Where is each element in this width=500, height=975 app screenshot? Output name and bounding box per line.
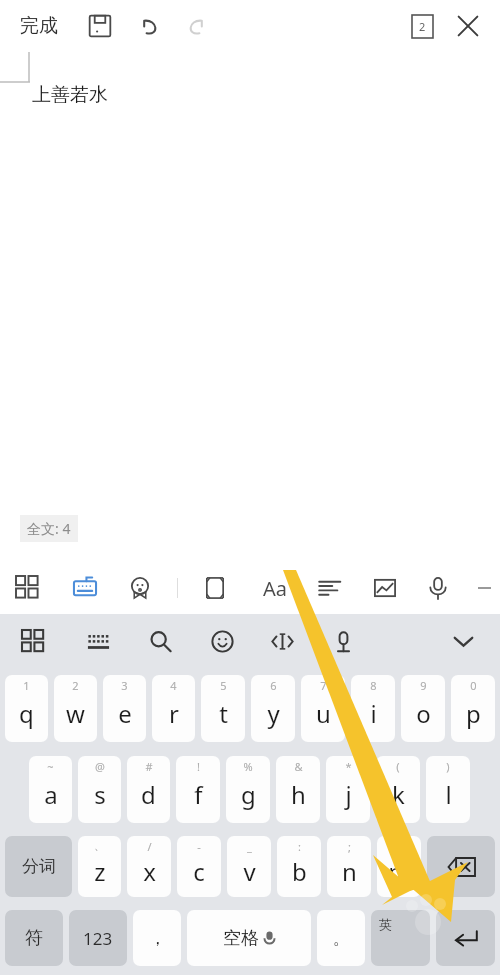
staticText: 6 — [270, 678, 277, 693]
button[interactable]: 3 — [103, 675, 146, 742]
staticText: _ — [247, 839, 252, 854]
button[interactable]: 英 — [371, 910, 430, 966]
staticText: e — [118, 697, 132, 730]
button[interactable]: 7 — [301, 675, 345, 742]
staticText: 7 — [320, 678, 327, 693]
button[interactable]: Alignment — [309, 567, 351, 609]
button[interactable]: @ — [78, 756, 121, 823]
staticText: 完成 — [20, 14, 58, 38]
button[interactable]: Emoji — [119, 567, 161, 609]
staticText: o — [416, 697, 431, 730]
button[interactable]: Aa — [254, 567, 296, 609]
staticText: 。 — [333, 928, 350, 949]
button[interactable]: Keyboard panel — [64, 567, 106, 609]
staticText: 2 — [419, 19, 426, 34]
staticText: 2 — [72, 678, 79, 693]
button[interactable]: Backspace — [427, 836, 495, 897]
button[interactable]: ; — [327, 836, 371, 897]
staticText: 0 — [470, 678, 477, 693]
staticText: k — [392, 778, 405, 811]
staticText: ( — [396, 759, 400, 774]
button[interactable]: * — [326, 756, 370, 823]
staticText: % — [243, 759, 253, 774]
button[interactable]: - — [177, 836, 221, 897]
staticText: 、 — [94, 839, 105, 853]
button[interactable]: Page count — [402, 6, 442, 46]
staticText: 空格 — [223, 927, 259, 950]
staticText: a — [44, 778, 58, 811]
button[interactable]: % — [226, 756, 270, 823]
button[interactable]: 。 — [317, 910, 365, 966]
button[interactable]: 空格 — [187, 910, 311, 966]
button[interactable]: ， — [133, 910, 181, 966]
button[interactable]: Save — [78, 4, 122, 48]
button[interactable]: / — [127, 836, 171, 897]
staticText: Aa — [263, 575, 287, 602]
button[interactable]: Keyboard — [77, 620, 119, 662]
button[interactable]: ! — [176, 756, 220, 823]
button[interactable]: ? — [377, 836, 421, 897]
button[interactable]: Search — [139, 620, 181, 662]
button[interactable]: 1 — [5, 675, 48, 742]
button[interactable]: 符 — [5, 910, 63, 966]
button[interactable]: 0 — [451, 675, 495, 742]
button[interactable]: 2 — [54, 675, 97, 742]
button[interactable]: Voice — [322, 620, 364, 662]
staticText: 9 — [420, 678, 427, 693]
staticText: y — [267, 697, 280, 730]
staticText: r — [169, 697, 179, 730]
staticText: n — [342, 855, 357, 888]
button[interactable]: 9 — [401, 675, 445, 742]
button[interactable]: ~ — [29, 756, 72, 823]
staticText: b — [292, 855, 307, 888]
button[interactable]: Emoji — [201, 620, 243, 662]
staticText: 上善若水 — [32, 83, 108, 107]
staticText: u — [316, 697, 331, 730]
button[interactable]: Cursor move — [261, 620, 303, 662]
staticText: 符 — [25, 927, 43, 950]
button[interactable]: Undo — [127, 4, 171, 48]
staticText: s — [94, 778, 106, 811]
staticText: h — [291, 778, 306, 811]
button[interactable]: Apps — [12, 620, 54, 662]
staticText: - — [197, 839, 201, 854]
button[interactable]: Page layout — [194, 567, 236, 609]
button[interactable]: 6 — [251, 675, 295, 742]
button[interactable]: 5 — [201, 675, 245, 742]
staticText: x — [143, 855, 156, 888]
button[interactable]: Voice input — [417, 567, 459, 609]
button[interactable]: Insert image — [364, 567, 406, 609]
staticText: d — [141, 778, 156, 811]
button[interactable]: Hide keyboard — [442, 620, 484, 662]
button[interactable]: Close — [446, 4, 490, 48]
staticText: w — [66, 697, 85, 730]
staticText: ! — [197, 759, 200, 774]
staticText: 8 — [370, 678, 377, 693]
staticText: m — [388, 855, 411, 888]
staticText: : — [298, 839, 301, 854]
button[interactable]: 4 — [152, 675, 195, 742]
staticText: # — [145, 759, 153, 774]
staticText: / — [147, 839, 152, 854]
button[interactable]: 、 — [78, 836, 121, 897]
button[interactable]: ) — [426, 756, 470, 823]
staticText: z — [94, 855, 106, 888]
staticText: * — [345, 759, 352, 774]
button[interactable]: Redo — [175, 4, 219, 48]
button[interactable]: # — [127, 756, 170, 823]
button[interactable]: 完成 — [14, 10, 64, 42]
button[interactable]: _ — [227, 836, 271, 897]
button[interactable]: 8 — [351, 675, 395, 742]
staticText: f — [194, 778, 203, 811]
staticText: 英 — [379, 916, 392, 932]
button[interactable]: & — [276, 756, 320, 823]
staticText: 全文: 4 — [27, 519, 71, 538]
button[interactable]: Enter — [436, 910, 495, 966]
button[interactable]: : — [277, 836, 321, 897]
button[interactable]: 123 — [69, 910, 127, 966]
staticText: 123 — [83, 927, 113, 950]
button[interactable]: ( — [376, 756, 420, 823]
button[interactable]: 分词 — [5, 836, 72, 897]
button[interactable]: Apps — [7, 567, 49, 609]
